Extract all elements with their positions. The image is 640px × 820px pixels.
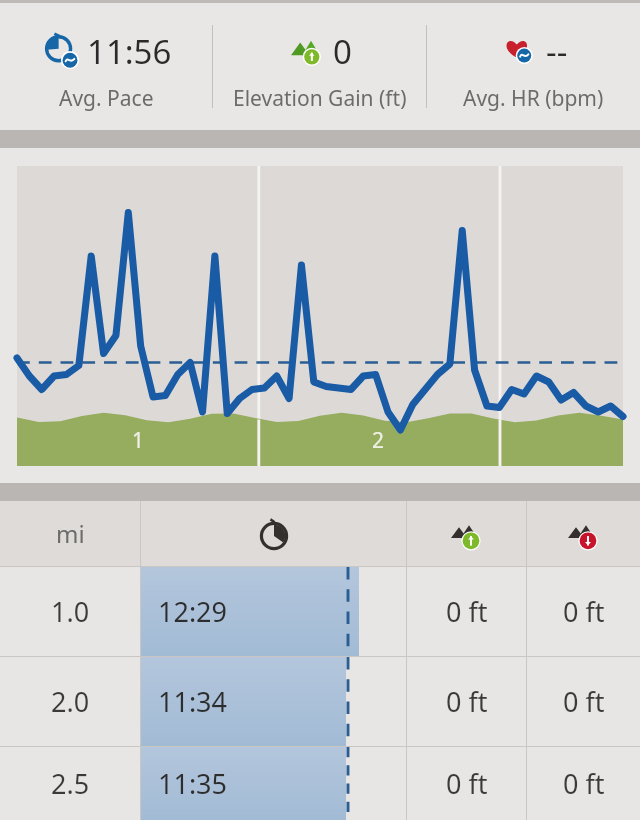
staticText: 1.0 (51, 593, 90, 630)
staticText: 0 ft (446, 683, 488, 720)
staticText: 12:29 (158, 593, 228, 630)
staticText: 11:34 (158, 683, 228, 720)
staticText: Avg. HR (bpm) (463, 84, 604, 113)
button[interactable]: 0 (213, 3, 426, 130)
staticText: mi (56, 517, 85, 550)
staticText: 0 (333, 29, 352, 74)
button[interactable]: Sort column (141, 501, 406, 566)
button[interactable]: Sort column (0, 501, 140, 566)
staticText: Elevation Gain (ft) (233, 84, 407, 113)
staticText: 11:35 (158, 765, 228, 802)
staticText: 2.5 (51, 765, 90, 802)
staticText: 1 (132, 426, 145, 455)
staticText: -- (546, 29, 568, 74)
button[interactable]: 11:56 (0, 3, 212, 130)
staticText: 2 (372, 426, 385, 455)
staticText: Avg. Pace (59, 84, 154, 113)
button[interactable]: Sort column (407, 501, 526, 566)
button[interactable]: -- (427, 3, 640, 130)
staticText: 0 ft (563, 765, 605, 802)
staticText: 0 ft (446, 765, 488, 802)
staticText: 0 ft (563, 593, 605, 630)
staticText: 2.0 (51, 683, 90, 720)
button[interactable]: 2.0 (0, 657, 640, 746)
button[interactable]: Sort column (527, 501, 640, 566)
button[interactable]: 1.0 (0, 567, 640, 656)
button[interactable]: 2.5 (0, 747, 640, 820)
staticText: 11:56 (87, 29, 172, 74)
staticText: 0 ft (563, 683, 605, 720)
staticText: 0 ft (446, 593, 488, 630)
